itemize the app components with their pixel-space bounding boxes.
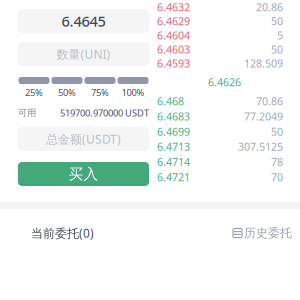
button[interactable]: 75%: [84, 77, 115, 97]
staticText: 70: [271, 170, 283, 184]
staticText: 6.4626: [208, 75, 241, 89]
staticText: 6.4604: [157, 28, 190, 42]
staticText: 6.4593: [157, 56, 190, 71]
staticText: 519700.970000 USDT: [60, 107, 149, 119]
button[interactable]: 当前委托(0): [31, 218, 94, 248]
staticText: 100%: [121, 86, 144, 99]
button[interactable]: 总金额(USDT): [18, 127, 149, 151]
button[interactable]: 100%: [117, 77, 148, 97]
button[interactable]: 25%: [18, 77, 49, 97]
button[interactable]: 历史委托: [233, 218, 292, 248]
staticText: 70.86: [256, 94, 283, 108]
staticText: 307.5125: [238, 140, 283, 154]
staticText: 6.4603: [157, 42, 190, 56]
staticText: 6.4645: [61, 11, 105, 31]
staticText: 历史委托: [244, 226, 292, 240]
button[interactable]: 6.4645: [18, 9, 149, 33]
staticText: 6.4632: [157, 0, 190, 14]
button[interactable]: 买入: [18, 162, 149, 186]
staticText: 6.4629: [157, 14, 190, 28]
staticText: 75%: [91, 86, 109, 99]
staticText: 当前委托(0): [31, 225, 94, 241]
staticText: 25%: [25, 86, 43, 99]
staticText: 128.509: [244, 56, 283, 71]
staticText: 77.2049: [244, 109, 283, 123]
staticText: 6.4699: [157, 124, 190, 139]
staticText: 50: [271, 42, 283, 56]
staticText: 数量(UNI): [56, 46, 110, 62]
staticText: 6.4713: [157, 140, 190, 154]
staticText: 50%: [58, 86, 76, 99]
staticText: 总金额(USDT): [46, 131, 121, 147]
staticText: 78: [271, 155, 283, 169]
staticText: 6.4683: [157, 109, 190, 123]
staticText: 6.4714: [157, 155, 190, 169]
staticText: 5: [277, 28, 283, 42]
staticText: 可用: [18, 107, 36, 119]
staticText: 6.4721: [157, 170, 190, 184]
button[interactable]: 50%: [51, 77, 82, 97]
staticText: 6.468: [157, 94, 184, 108]
staticText: 买入: [68, 165, 98, 183]
staticText: 20.86: [256, 0, 283, 14]
staticText: 50: [271, 14, 283, 28]
button[interactable]: 数量(UNI): [18, 42, 149, 66]
staticText: 50: [271, 124, 283, 139]
